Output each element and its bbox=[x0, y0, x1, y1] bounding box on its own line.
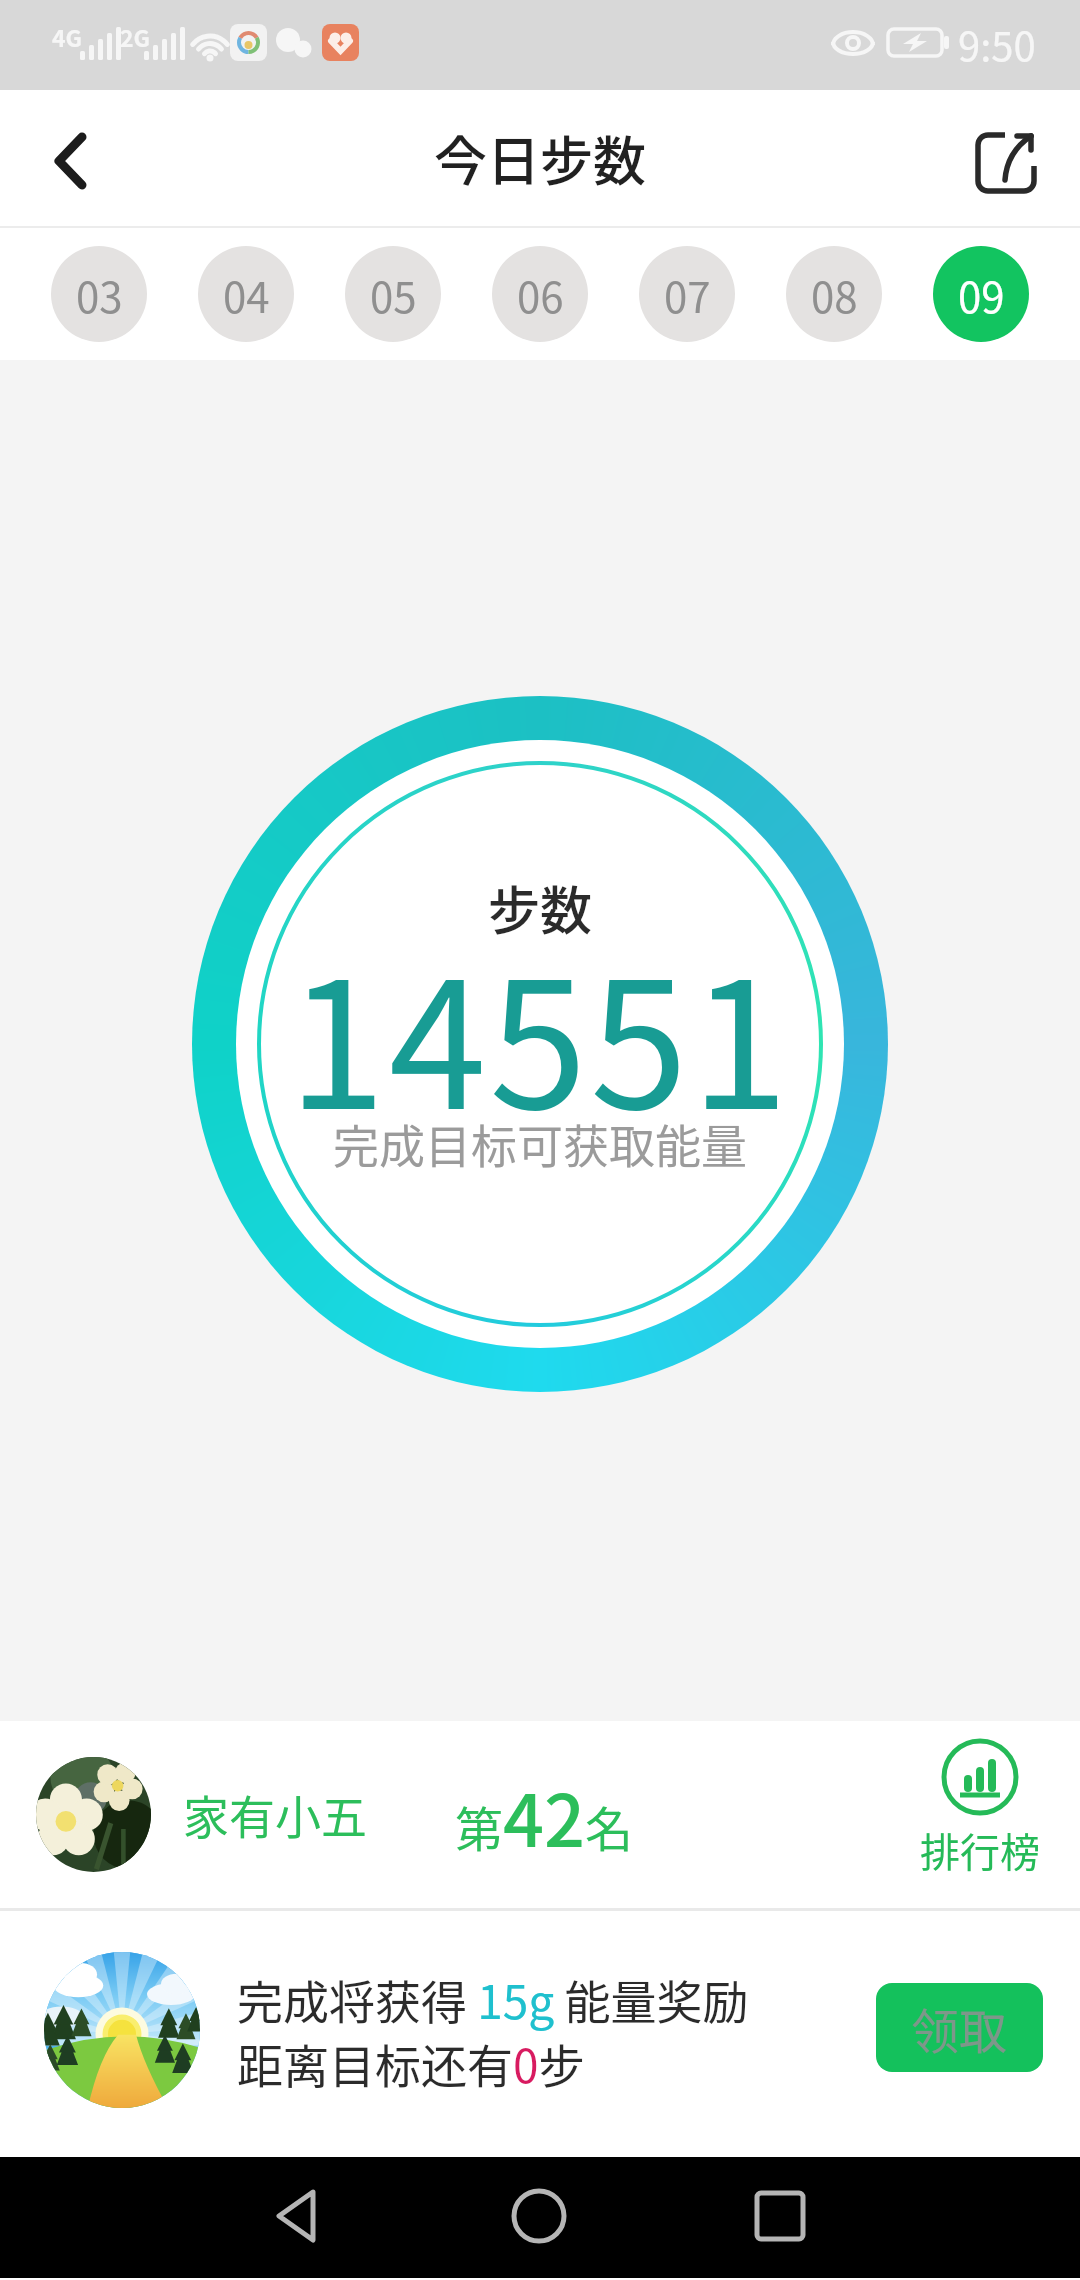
button[interactable]: 排行榜 bbox=[920, 1739, 1040, 1879]
button[interactable]: 03 bbox=[51, 246, 147, 342]
staticText: 03 bbox=[76, 264, 123, 325]
staticText: 04 bbox=[223, 264, 270, 325]
button[interactable] bbox=[484, 2157, 594, 2278]
staticText: 今日步数 bbox=[434, 120, 646, 197]
staticText: 06 bbox=[517, 264, 564, 325]
button[interactable]: 家有小五 bbox=[0, 1721, 1080, 1908]
button[interactable]: 08 bbox=[786, 246, 882, 342]
button[interactable]: 07 bbox=[639, 246, 735, 342]
button[interactable]: 04 bbox=[198, 246, 294, 342]
staticText: 4G bbox=[52, 20, 83, 53]
button[interactable] bbox=[33, 128, 103, 198]
staticText: 09 bbox=[958, 264, 1005, 325]
button[interactable]: 06 bbox=[492, 246, 588, 342]
staticText: 距离目标还有0步 bbox=[237, 2030, 585, 2097]
button[interactable] bbox=[725, 2157, 835, 2278]
staticText: 排行榜 bbox=[920, 1821, 1040, 1879]
button[interactable] bbox=[244, 2157, 354, 2278]
staticText: 领取 bbox=[911, 1993, 1008, 2063]
button[interactable]: 领取 bbox=[876, 1983, 1043, 2072]
button[interactable]: 09 bbox=[933, 246, 1029, 342]
staticText: 2G bbox=[120, 20, 151, 53]
button[interactable]: 05 bbox=[345, 246, 441, 342]
staticText: 第42名 bbox=[455, 1763, 634, 1867]
staticText: 完成目标可获取能量 bbox=[333, 1110, 747, 1177]
staticText: 08 bbox=[811, 264, 858, 325]
staticText: 14551 bbox=[288, 905, 792, 1160]
staticText: 07 bbox=[664, 264, 711, 325]
staticText: 步数 bbox=[488, 870, 593, 945]
button[interactable] bbox=[960, 113, 1056, 209]
staticText: 家有小五 bbox=[183, 1781, 367, 1848]
staticText: 完成将获得 15g 能量奖励 bbox=[237, 1966, 749, 2033]
staticText: 05 bbox=[370, 264, 417, 325]
staticText: 9:50 bbox=[958, 15, 1036, 73]
